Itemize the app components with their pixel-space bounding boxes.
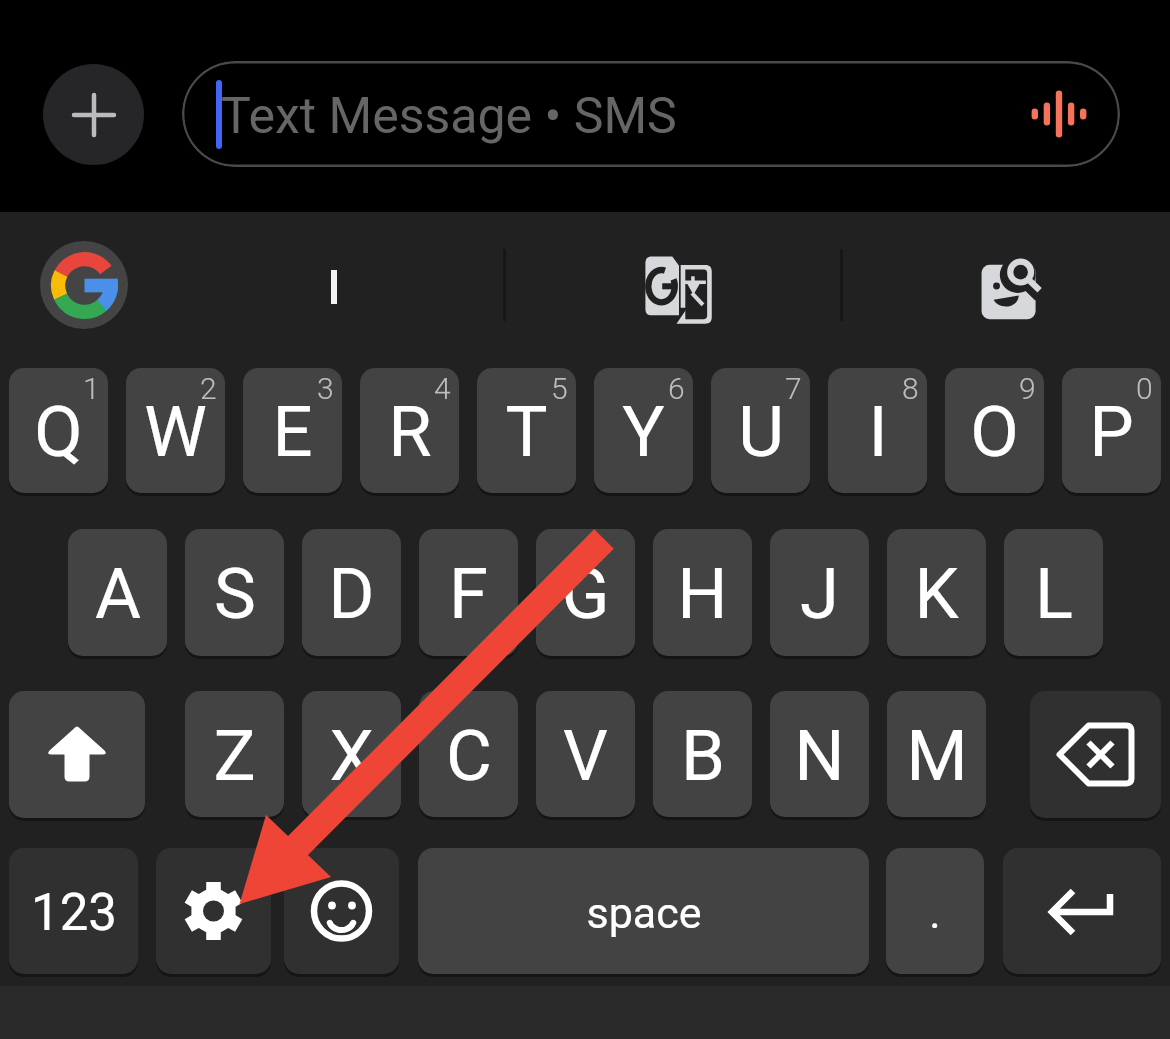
staticText: Text Message • SMS	[221, 87, 677, 146]
staticText: 6	[668, 371, 685, 406]
button[interactable]: Translate	[637, 249, 721, 333]
button[interactable]: R	[360, 368, 459, 493]
staticText: G	[561, 553, 610, 636]
staticText: L	[1035, 553, 1073, 636]
button[interactable]: Z	[185, 691, 284, 817]
button[interactable]: E	[243, 368, 342, 493]
button[interactable]: S	[185, 529, 284, 656]
staticText: .	[929, 888, 941, 938]
button[interactable]: T	[477, 368, 576, 493]
staticText: I	[868, 391, 888, 474]
staticText: Q	[34, 391, 83, 474]
button[interactable]: F	[419, 529, 518, 656]
button[interactable]: Voice message	[1028, 83, 1090, 145]
staticText: B	[681, 715, 725, 798]
button[interactable]: emoji	[284, 848, 399, 974]
button[interactable]: H	[653, 529, 752, 656]
staticText: X	[329, 715, 374, 798]
staticText: H	[677, 553, 728, 636]
button[interactable]: U	[711, 368, 810, 493]
staticText: W	[144, 391, 207, 474]
button[interactable]: space	[418, 848, 869, 974]
staticText: V	[563, 715, 608, 798]
staticText: S	[214, 553, 256, 636]
staticText: F	[449, 553, 488, 636]
staticText: C	[446, 715, 492, 798]
staticText: 123	[31, 883, 117, 943]
staticText: 8	[902, 371, 919, 406]
staticText: K	[914, 553, 959, 636]
staticText: O	[970, 391, 1019, 474]
button[interactable]: C	[419, 691, 518, 817]
staticText: Y	[622, 391, 665, 474]
staticText: D	[328, 553, 375, 636]
button[interactable]: Search stickers	[975, 252, 1048, 325]
staticText: U	[738, 391, 784, 474]
staticText: 2	[200, 371, 217, 406]
button[interactable]: Y	[594, 368, 693, 493]
button[interactable]: X	[302, 691, 401, 817]
staticText: J	[800, 553, 839, 636]
button[interactable]: G	[536, 529, 635, 656]
button[interactable]: K	[887, 529, 986, 656]
button[interactable]: backspace	[1030, 691, 1161, 818]
button[interactable]: O	[945, 368, 1044, 493]
button[interactable]: Text Message • SMS	[182, 61, 1120, 167]
button[interactable]: Add attachment	[43, 64, 144, 165]
button[interactable]: N	[770, 691, 869, 817]
button[interactable]: gear	[156, 848, 271, 974]
staticText: 3	[317, 371, 334, 406]
button[interactable]: 123	[9, 848, 138, 974]
staticText: T	[505, 391, 548, 474]
button[interactable]: L	[1004, 529, 1103, 656]
button[interactable]: Q	[9, 368, 108, 493]
staticText: 9	[1019, 371, 1036, 406]
button[interactable]: W	[126, 368, 225, 493]
button[interactable]: shift	[9, 691, 145, 818]
button[interactable]: I	[828, 368, 927, 493]
button[interactable]: J	[770, 529, 869, 656]
button[interactable]: enter	[1003, 848, 1161, 974]
staticText: 4	[434, 371, 451, 406]
staticText: 5	[551, 371, 568, 406]
staticText: Z	[213, 715, 256, 798]
button[interactable]: Google search	[40, 241, 128, 329]
staticText: 7	[785, 371, 802, 406]
staticText: 1	[83, 371, 100, 406]
staticText: R	[388, 391, 432, 474]
staticText: N	[794, 715, 845, 798]
staticText: A	[95, 553, 141, 636]
button[interactable]: V	[536, 691, 635, 817]
button[interactable]: .	[886, 848, 984, 974]
button[interactable]: A	[68, 529, 167, 656]
button[interactable]: D	[302, 529, 401, 656]
button[interactable]: B	[653, 691, 752, 817]
staticText: P	[1089, 391, 1134, 474]
staticText: M	[906, 715, 968, 798]
staticText: 0	[1136, 371, 1153, 406]
staticText: E	[272, 391, 313, 474]
button[interactable]: M	[887, 691, 986, 817]
staticText: space	[586, 888, 702, 938]
button[interactable]: P	[1062, 368, 1161, 493]
